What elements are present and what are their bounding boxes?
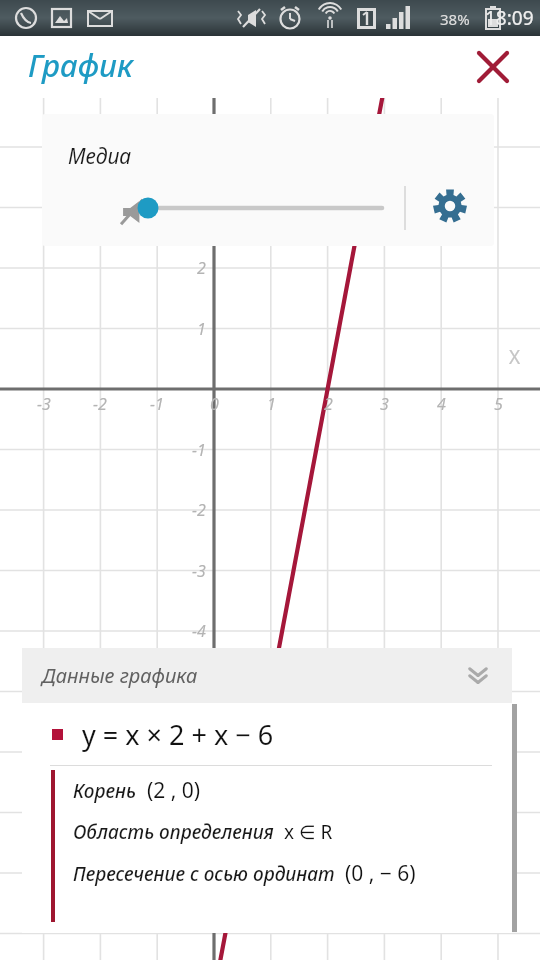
staticText: -2 — [93, 393, 107, 415]
staticText: -1 — [150, 393, 164, 415]
staticText: (0 , − 6) — [345, 859, 416, 888]
staticText: Медиа — [68, 142, 132, 171]
staticText: x ∈ R — [284, 819, 333, 845]
button[interactable]: Close — [472, 46, 514, 88]
staticText: График — [28, 44, 134, 86]
staticText: (2 , 0) — [147, 776, 201, 805]
button[interactable]: Mute — [112, 188, 160, 236]
staticText: X — [509, 344, 521, 370]
button[interactable]: y = x × 2 + x − 6 — [22, 703, 512, 765]
staticText: -3 — [192, 560, 206, 582]
staticText: -4 — [192, 620, 206, 642]
staticText: 4 — [437, 393, 446, 415]
staticText: 2 — [324, 393, 333, 415]
staticText: Пересечение с осью ординат — [73, 861, 335, 887]
button[interactable]: Settings — [424, 180, 476, 232]
staticText: 2 — [197, 257, 206, 279]
button[interactable]: Данные графика — [22, 648, 512, 703]
staticText: 5 — [494, 393, 503, 415]
staticText: -1 — [192, 439, 206, 461]
staticText: Данные графика — [42, 662, 198, 689]
staticText: Корень — [73, 778, 137, 804]
staticText: 18:09 — [485, 5, 534, 31]
button[interactable]: Media volume — [138, 188, 384, 228]
staticText: -3 — [37, 393, 51, 415]
staticText: 3 — [380, 393, 389, 415]
staticText: -2 — [192, 499, 206, 521]
button[interactable]: Collapse — [458, 656, 498, 696]
staticText: 0 — [210, 393, 219, 415]
staticText: 1 — [267, 393, 276, 415]
staticText: 38% — [440, 9, 470, 29]
staticText: y = x × 2 + x − 6 — [82, 716, 274, 753]
staticText: 1 — [197, 318, 206, 340]
staticText: Область определения — [73, 819, 274, 845]
